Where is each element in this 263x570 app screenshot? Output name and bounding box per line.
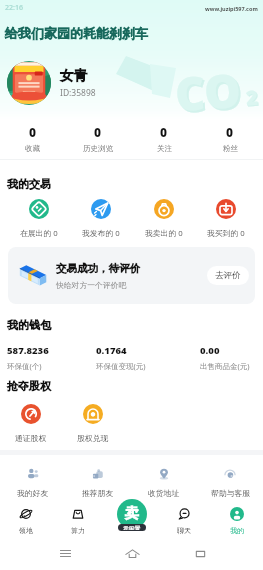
button[interactable]: 推荐朋友 [65, 467, 131, 498]
staticText: 2 [245, 84, 259, 111]
button[interactable]: 我发布的 0 [75, 199, 127, 238]
staticText: 聊天 [177, 526, 191, 535]
staticText: 去评价 [215, 270, 241, 281]
button[interactable]: 我卖出的 0 [138, 199, 190, 238]
staticText: 帮助与客服 [211, 488, 250, 498]
staticText: 收藏 [25, 144, 40, 153]
staticText: 卖 [125, 505, 139, 523]
staticText: 我的 [230, 526, 244, 535]
button[interactable]: 在展出的 0 [13, 199, 65, 238]
staticText: 我的交易 [7, 177, 51, 191]
button[interactable]: 收货地址 [131, 467, 197, 498]
staticText: 女青 [60, 67, 87, 84]
staticText: 卖闲置 [123, 525, 141, 530]
staticText: 我发布的 0 [82, 228, 120, 238]
staticText: CO [175, 60, 245, 127]
staticText: 在展出的 0 [20, 228, 58, 238]
button[interactable]: 卖 [117, 499, 147, 536]
staticText: 0 [226, 124, 234, 140]
button[interactable]: Recent apps [59, 547, 72, 560]
button[interactable]: 帮助与客服 [197, 467, 263, 498]
button[interactable]: 0 [65, 124, 131, 153]
button[interactable]: 0 [131, 124, 197, 153]
staticText: 0.00 [200, 344, 220, 357]
staticText: 快给对方一个评价吧 [56, 280, 127, 290]
staticText: 环保值(个) [7, 361, 42, 371]
staticText: 抢夺股权 [7, 379, 51, 393]
button[interactable]: 587.8236 [7, 344, 49, 371]
staticText: CO [173, 58, 243, 125]
staticText: 给我们家园的耗能刹刹车 [5, 25, 148, 41]
button[interactable]: 领地 [0, 499, 52, 536]
staticText: 环保值变现(元) [96, 361, 146, 371]
staticText: 股权兑现 [77, 433, 109, 443]
staticText: 出售商品金(元) [200, 361, 250, 371]
staticText: 587.8236 [7, 344, 49, 357]
staticText: www.juzipi597.com [205, 5, 258, 12]
button[interactable]: 0.00 [200, 344, 250, 371]
button[interactable]: 股权兑现 [67, 404, 119, 443]
staticText: 交易成功，待评价 [56, 262, 140, 275]
staticText: 我买到的 0 [207, 228, 245, 238]
button[interactable]: 0.1764 [96, 344, 146, 371]
staticText: 0 [160, 124, 168, 140]
staticText: 我卖出的 0 [145, 228, 183, 238]
button[interactable]: 我的好友 [0, 467, 65, 498]
button[interactable]: 算力 [52, 499, 104, 536]
staticText: 历史浏览 [83, 144, 113, 153]
button[interactable]: 女青 [7, 61, 167, 105]
staticText: 0.1764 [96, 344, 127, 357]
button[interactable]: 交易成功，待评价 [8, 247, 255, 304]
staticText: 0 [94, 124, 102, 140]
staticText: 关注 [157, 144, 172, 153]
button[interactable]: Back [194, 547, 207, 560]
staticText: 0 [29, 124, 37, 140]
staticText: 通证股权 [15, 433, 47, 443]
button[interactable]: 通证股权 [5, 404, 57, 443]
staticText: 粉丝 [223, 144, 238, 153]
staticText: 22:16 [5, 3, 23, 13]
staticText: ID:35898 [60, 87, 96, 99]
button[interactable]: 去评价 [207, 266, 249, 285]
staticText: 算力 [71, 526, 85, 535]
staticText: 推荐朋友 [82, 488, 114, 498]
button[interactable]: 我的 [210, 499, 263, 536]
button[interactable]: Home [125, 546, 140, 561]
button[interactable]: 0 [0, 124, 65, 153]
staticText: 我的钱包 [7, 318, 51, 332]
staticText: 我的好友 [17, 488, 49, 498]
button[interactable]: 我买到的 0 [200, 199, 252, 238]
staticText: 收货地址 [148, 488, 180, 498]
button[interactable]: 0 [197, 124, 263, 153]
button[interactable]: 聊天 [157, 499, 210, 536]
staticText: 2 [246, 85, 260, 112]
staticText: 领地 [19, 526, 33, 535]
